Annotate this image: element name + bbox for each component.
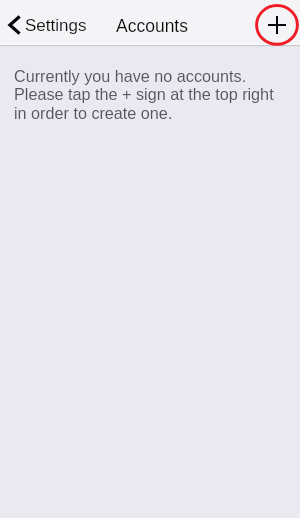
button[interactable]: Settings	[8, 6, 87, 45]
staticText: Currently you have no accounts. Please t…	[14, 67, 274, 123]
button[interactable]: Add account	[254, 4, 300, 46]
staticText: Settings	[25, 16, 87, 35]
staticText: Accounts	[116, 16, 188, 36]
